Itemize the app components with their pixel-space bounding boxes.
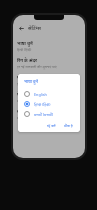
staticText: सेटिंग्स <box>28 24 41 31</box>
staticText: रद्द करें <box>47 123 56 128</box>
staticText: भाषा चुनें <box>17 40 33 46</box>
staticText: मराठी (मराठी) <box>34 112 54 117</box>
button[interactable]: मराठी (मराठी) <box>18 109 80 119</box>
staticText: हमारी नीति देखें <box>17 81 36 85</box>
button[interactable]: Back <box>16 23 26 33</box>
button[interactable]: गोपनीयता नीति <box>13 71 85 88</box>
staticText: भाषा चुनें <box>24 79 38 85</box>
staticText: ठीक है <box>64 123 73 128</box>
staticText: संस्करण 1.0.2 <box>17 98 36 102</box>
button[interactable]: रिंग के अंदर <box>13 54 85 71</box>
button[interactable]: ठीक है <box>62 122 75 129</box>
staticText: हर नई जानकारी और सूचनाएं पाएं <box>17 64 57 68</box>
button[interactable]: रद्द करें <box>45 122 58 129</box>
button[interactable]: हिन्दी (हिंदी) <box>18 99 80 109</box>
staticText: English <box>34 92 47 97</box>
staticText: हिन्दी (हिंदी) <box>17 47 32 51</box>
button[interactable]: English <box>18 89 80 99</box>
button[interactable]: ऐप के बारे में <box>13 88 85 105</box>
button[interactable]: सहायता केंद्र <box>13 105 85 122</box>
staticText: सवाल और जवाब <box>17 115 38 119</box>
staticText: सहायता केंद्र <box>17 108 39 114</box>
staticText: रिंग के अंदर <box>17 57 38 63</box>
staticText: ऐप के बारे में <box>17 91 39 97</box>
staticText: गोपनीयता नीति <box>17 74 44 80</box>
staticText: हिन्दी (हिंदी) <box>34 102 51 107</box>
button[interactable]: भाषा चुनें <box>13 37 85 54</box>
